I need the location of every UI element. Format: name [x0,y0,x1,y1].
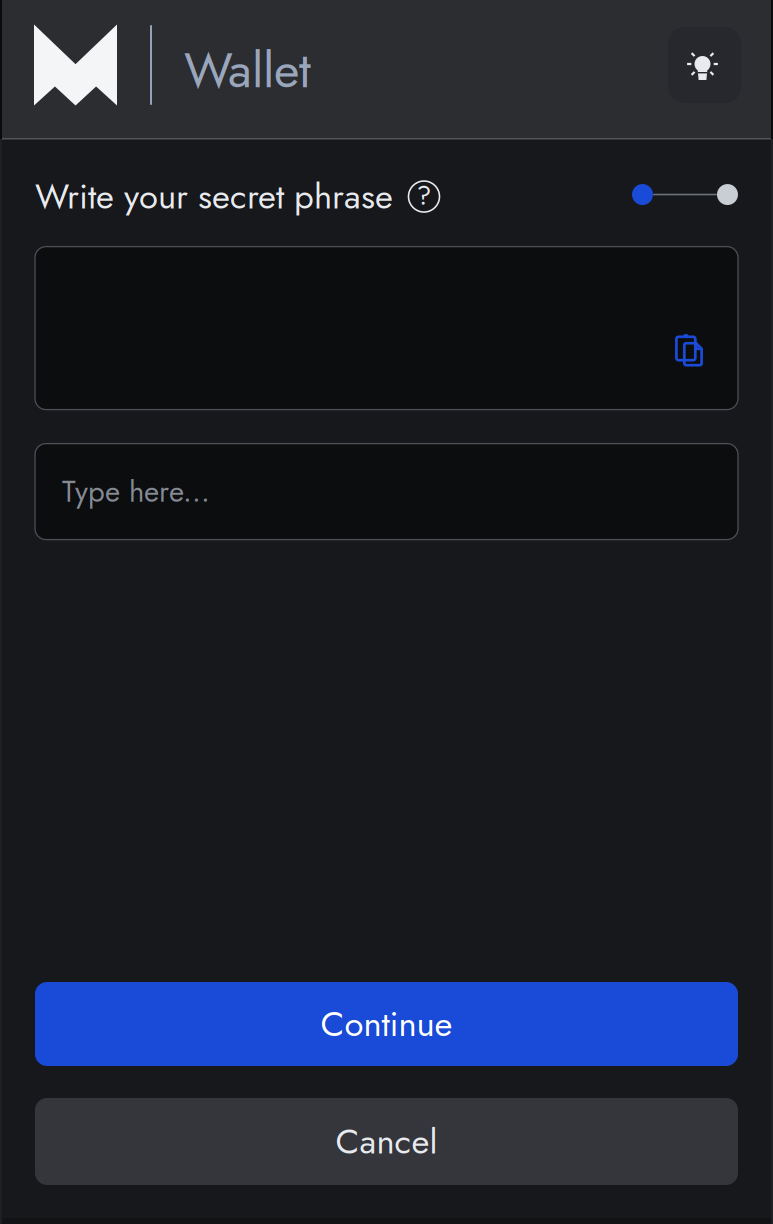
staticText: Type here... [62,470,210,513]
button[interactable]: Tips [668,31,741,107]
button[interactable]: Continue [35,982,738,1066]
staticText: Cancel [335,1116,437,1167]
button[interactable]: Paste from clipboard [675,334,703,367]
button[interactable]: Cancel [35,1098,738,1185]
staticText: ? [416,176,431,215]
staticText: Wallet [184,34,311,106]
staticText: Continue [320,999,452,1049]
button[interactable]: What is a secret phrase? [393,179,441,213]
staticText: Write your secret phrase [35,171,393,222]
